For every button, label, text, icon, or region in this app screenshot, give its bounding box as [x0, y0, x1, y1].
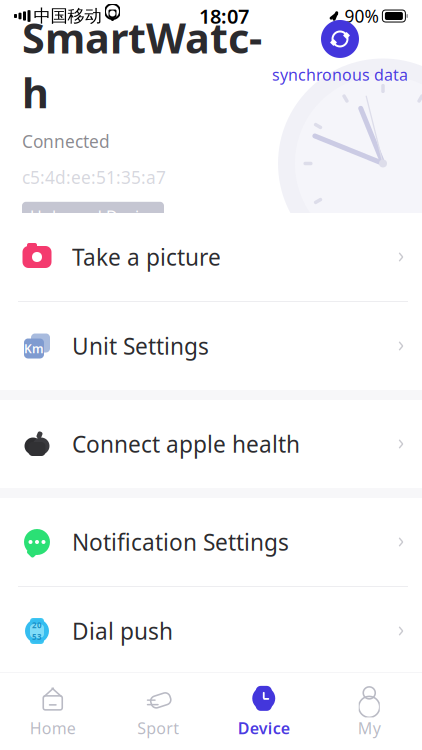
- staticText: Unit Settings: [72, 331, 209, 361]
- staticText: c5:4d:ee:51:35:a7: [22, 166, 166, 189]
- staticText: SmartWatch: [22, 10, 262, 120]
- button[interactable]: Unbound Device: [22, 202, 164, 231]
- button[interactable]: synchronous data: [272, 20, 408, 85]
- button[interactable]: My: [316, 678, 422, 744]
- staticText: Home: [30, 717, 76, 739]
- button[interactable]: Home: [0, 678, 105, 744]
- button[interactable]: Km: [0, 302, 422, 390]
- staticText: synchronous data: [272, 64, 408, 85]
- staticText: Dial push: [72, 616, 173, 646]
- button[interactable]: 20: [0, 587, 422, 675]
- staticText: Sport: [137, 717, 179, 739]
- button[interactable]: Connect apple health: [0, 400, 422, 488]
- staticText: Take a picture: [72, 242, 221, 272]
- button[interactable]: Notification Settings: [0, 498, 422, 586]
- staticText: 53: [32, 631, 42, 642]
- staticText: Device: [238, 717, 290, 739]
- staticText: 20: [32, 620, 42, 630]
- staticText: Unbound Device: [30, 206, 156, 227]
- staticText: Connected: [22, 130, 110, 153]
- staticText: Km: [24, 340, 44, 356]
- staticText: 90%: [344, 4, 378, 27]
- staticText: Connect apple health: [72, 429, 300, 459]
- button[interactable]: Sport: [105, 678, 211, 744]
- staticText: 中国移动: [33, 5, 101, 27]
- staticText: Notification Settings: [72, 527, 289, 557]
- button[interactable]: Take a picture: [0, 213, 422, 301]
- staticText: 18:07: [199, 3, 249, 29]
- staticText: My: [358, 717, 381, 739]
- button[interactable]: Device: [211, 678, 316, 744]
